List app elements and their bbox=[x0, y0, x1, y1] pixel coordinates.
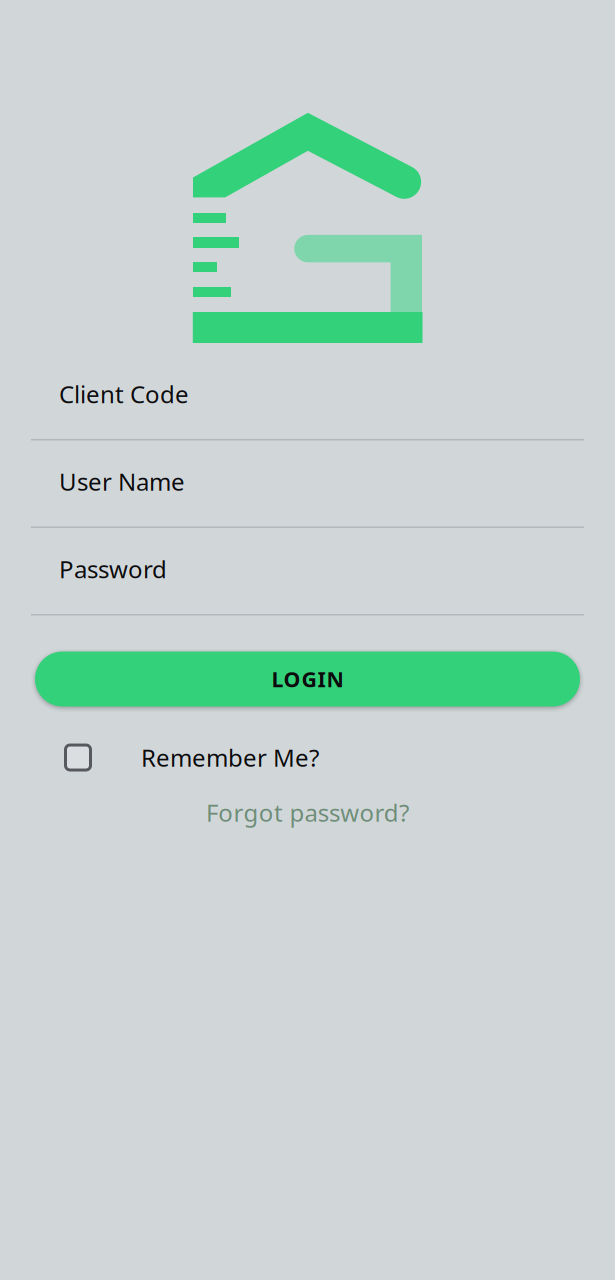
button[interactable]: LOGIN bbox=[0, 651, 615, 706]
staticText: Password bbox=[59, 553, 167, 585]
button[interactable]: Password bbox=[0, 528, 615, 615]
button[interactable]: User Name bbox=[0, 440, 615, 528]
staticText: Client Code bbox=[59, 378, 189, 410]
button[interactable]: Client Code bbox=[0, 353, 615, 440]
staticText: Remember Me? bbox=[141, 742, 319, 773]
button[interactable]: Forgot password? bbox=[0, 797, 615, 827]
staticText: Forgot password? bbox=[206, 797, 409, 828]
staticText: LOGIN bbox=[271, 665, 343, 693]
staticText: User Name bbox=[59, 466, 185, 497]
button[interactable]: Remember Me? bbox=[0, 742, 615, 772]
